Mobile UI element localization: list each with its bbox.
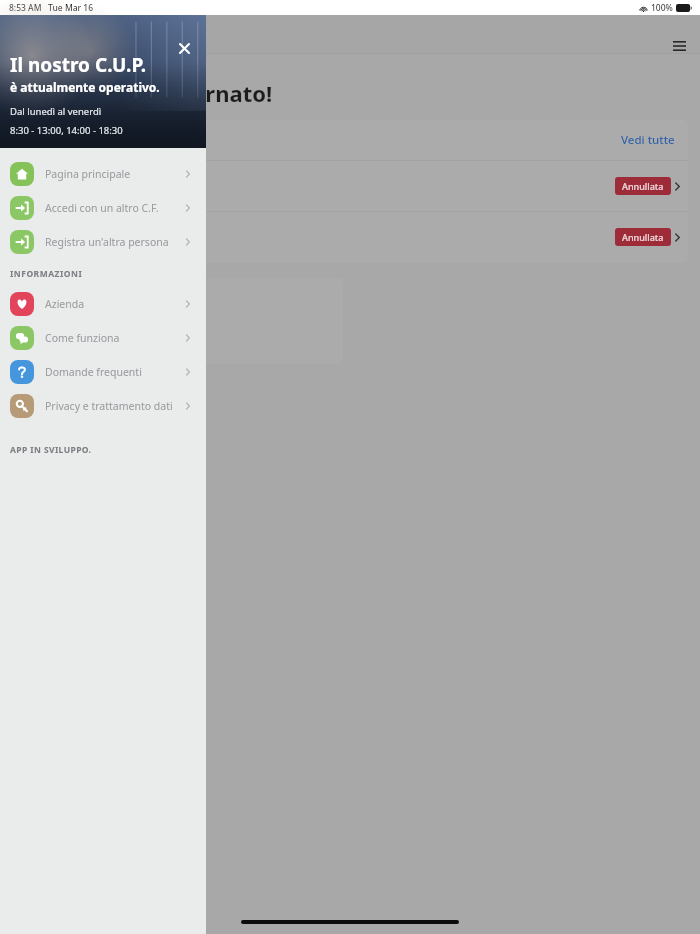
staticText: Le tue prenotazioni (22, 132, 136, 148)
button[interactable]: Come funziona (0, 321, 206, 355)
staticText: Visita specialistica (22, 221, 122, 237)
staticText: Mar 16 · 09:30 (22, 240, 89, 254)
staticText: Visita specialistica (22, 170, 122, 186)
staticText: è attualmente operativo. (10, 79, 160, 95)
button[interactable]: Pagina principale (0, 157, 206, 191)
staticText: Bentornato! (140, 78, 273, 108)
button[interactable]: Visita specialistica (8, 161, 688, 211)
staticText: Come funziona (45, 331, 120, 345)
button[interactable]: Menu (666, 33, 692, 59)
staticText: Il nostro C.U.P. (10, 52, 147, 78)
staticText: Azienda (45, 297, 85, 311)
staticText: Pagina principale (45, 167, 131, 181)
button[interactable]: Domande frequenti (0, 355, 206, 389)
staticText: Mar 16 · 09:30 (22, 189, 89, 203)
staticText: Annullata (622, 180, 664, 192)
staticText: Privacy e trattamento dati (45, 399, 173, 413)
staticText: 8:53 AM Tue Mar 16 (9, 2, 94, 14)
staticText: 8:30 - 13:00, 14:00 - 18:30 (10, 124, 123, 137)
staticText: INFORMAZIONI (10, 268, 83, 280)
button[interactable]: Vedi tutte (621, 132, 675, 148)
staticText: Domande frequenti (45, 365, 142, 379)
staticText: Accedi con un altro C.F. (45, 201, 159, 215)
button[interactable]: Chiama il C.U.P. (8, 278, 343, 364)
button[interactable]: Privacy e trattamento dati (0, 389, 206, 423)
staticText: Annullata (622, 231, 664, 243)
button[interactable]: Accedi con un altro C.F. (0, 191, 206, 225)
staticText: Chiama il C.U.P. (24, 328, 120, 346)
staticText: Dal lunedì al venerdì (10, 105, 102, 118)
staticText: Registra un'altra persona (45, 235, 169, 249)
staticText: 100% (651, 2, 673, 14)
button[interactable]: Azienda (0, 287, 206, 321)
button[interactable]: Visita specialistica (8, 212, 688, 262)
button[interactable]: Chiudi (174, 38, 195, 59)
button[interactable]: Registra un'altra persona (0, 225, 206, 259)
staticText: Vedi tutte (621, 132, 675, 148)
staticText: APP IN SVILUPPO. (10, 444, 92, 456)
